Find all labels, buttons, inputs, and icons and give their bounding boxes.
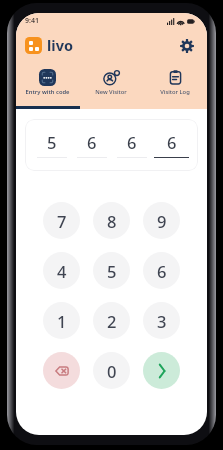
staticText: 3 <box>157 310 167 332</box>
staticText: Visitor Log <box>160 88 190 96</box>
staticText: 6 <box>167 131 177 153</box>
staticText: New Visitor <box>95 88 127 96</box>
staticText: 4 <box>57 260 67 282</box>
staticText: 5 <box>47 131 57 153</box>
button[interactable]: 5 <box>93 252 130 289</box>
staticText: 9:41 <box>25 16 39 26</box>
button[interactable]: Settings <box>178 37 196 55</box>
button[interactable]: 3 <box>143 302 180 339</box>
staticText: livo <box>47 35 73 55</box>
staticText: Entry with code <box>25 88 70 96</box>
staticText: 6 <box>157 260 167 282</box>
button[interactable]: 2 <box>93 302 130 339</box>
staticText: 0 <box>107 360 117 382</box>
button[interactable]: 0 <box>93 352 130 389</box>
button[interactable]: New Visitor <box>79 59 143 96</box>
button[interactable]: Submit <box>143 352 180 389</box>
button[interactable]: 4 <box>43 252 80 289</box>
button[interactable]: Backspace <box>43 352 80 389</box>
staticText: 9 <box>157 210 167 232</box>
staticText: 2 <box>107 310 117 332</box>
button[interactable]: 9 <box>143 202 180 239</box>
staticText: 5 <box>107 260 117 282</box>
button[interactable]: 7 <box>43 202 80 239</box>
staticText: 8 <box>107 210 117 232</box>
staticText: 1 <box>57 310 67 332</box>
button[interactable]: 1 <box>43 302 80 339</box>
staticText: 6 <box>127 131 137 153</box>
button[interactable]: Visitor Log <box>143 59 207 96</box>
button[interactable]: 8 <box>93 202 130 239</box>
button[interactable]: 6 <box>143 252 180 289</box>
staticText: 7 <box>57 210 67 232</box>
staticText: 6 <box>87 131 97 153</box>
button[interactable]: Entry with code <box>16 59 79 96</box>
